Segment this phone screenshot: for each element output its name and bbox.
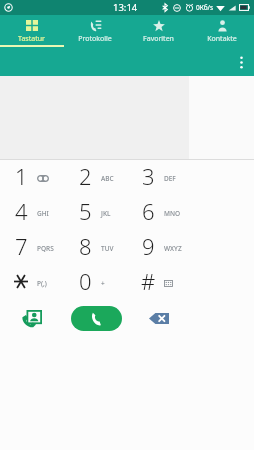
button[interactable]: 4 [0,195,64,230]
staticText: ABC [101,174,114,183]
staticText: Protokolle [78,34,112,44]
staticText: 5 [79,196,92,226]
staticText: TUV [101,244,114,253]
staticText: 4 [15,196,28,226]
staticText: 9 [142,231,155,261]
button[interactable]: 7 [0,230,64,265]
button[interactable]: Tastatur [0,15,63,62]
button[interactable]: Protokolle [63,15,126,62]
button[interactable]: 1 [0,160,64,195]
button[interactable]: 0 [64,265,127,300]
staticText: Favoriten [143,34,174,44]
staticText: 3 [142,161,155,191]
button[interactable]: Kontakte [190,15,254,62]
button[interactable]: 5 [64,195,127,230]
button[interactable]: Call [71,306,122,331]
staticText: GHI [37,209,49,218]
staticText: 7 [15,231,28,261]
staticText: # [141,266,156,296]
button[interactable]: 3 [127,160,190,195]
staticText: MNO [164,209,181,218]
staticText: PQRS [37,244,54,253]
button[interactable]: Favoriten [126,15,190,62]
staticText: + [101,279,105,288]
staticText: 2 [79,161,92,191]
staticText: DEF [164,174,176,183]
staticText: Kontakte [207,34,237,44]
button[interactable]: Backspace [127,300,190,337]
button[interactable]: # [127,265,190,300]
staticText: 1 [15,161,28,191]
button[interactable]: More options [230,50,252,74]
button[interactable]: 2 [64,160,127,195]
staticText: 6 [142,196,155,226]
staticText: Tastatur [18,34,45,44]
button[interactable]: P(,) [0,265,64,300]
button[interactable]: Add to contacts [0,300,64,337]
staticText: P(,) [37,279,47,288]
staticText: 0 [79,266,92,296]
button[interactable]: 9 [127,230,190,265]
staticText: 8 [79,231,92,261]
staticText: WXYZ [164,244,182,253]
staticText: 0Кб/s [196,3,214,12]
staticText: JKL [101,209,111,218]
button[interactable]: 8 [64,230,127,265]
button[interactable]: 6 [127,195,190,230]
staticText: 13:14 [113,1,138,14]
